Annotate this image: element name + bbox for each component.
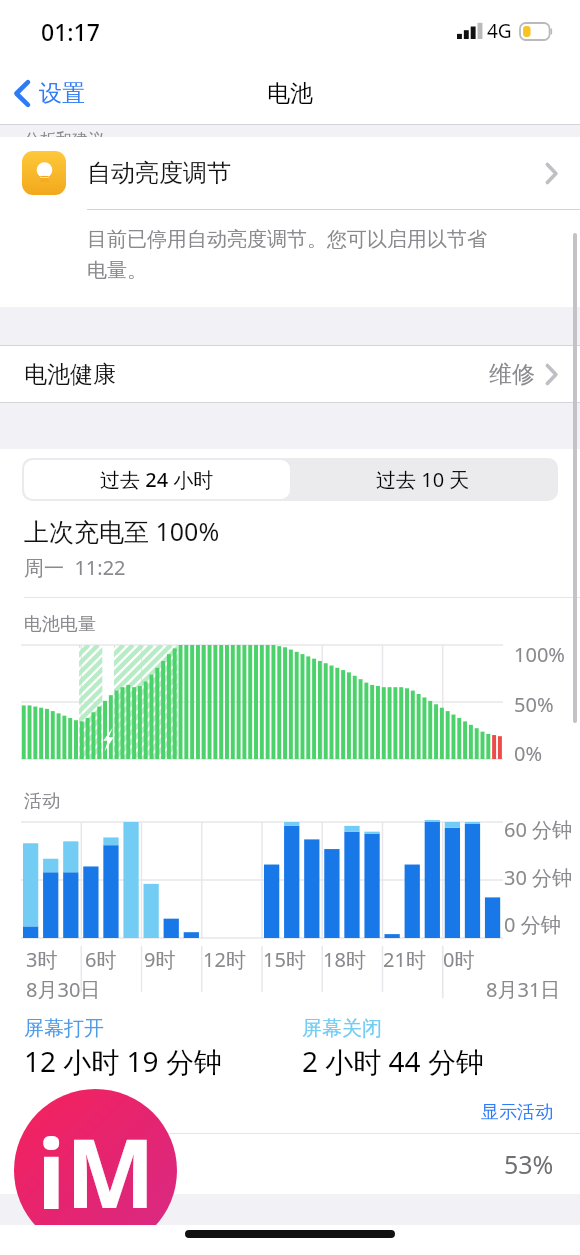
staticText: 目前已停用自动亮度调节。您可以启用以节省 电量。: [87, 227, 487, 283]
staticText: 周一 11:22: [24, 554, 126, 581]
staticText: 53%: [504, 1147, 554, 1181]
button[interactable]: 过去 10 天: [290, 460, 556, 499]
staticText: 电池: [267, 79, 313, 108]
staticText: 8月30日: [26, 976, 101, 1002]
staticText: 过去 10 天: [376, 466, 470, 493]
other: Home indicator: [185, 1230, 395, 1238]
staticText: 电池健康: [24, 360, 489, 389]
staticText: 01:17: [41, 16, 100, 47]
staticText: 上次充电至 100%: [24, 514, 220, 548]
staticText: 自动亮度调节: [87, 158, 545, 188]
staticText: 屏幕打开: [24, 1016, 104, 1041]
staticText: iM: [37, 1106, 155, 1235]
staticText: 0时: [443, 946, 475, 973]
button[interactable]: 电池健康: [0, 346, 580, 402]
staticText: 15时: [263, 946, 306, 973]
staticText: 设置: [39, 79, 85, 108]
staticText: 9时: [144, 946, 176, 973]
staticText: 30 分钟: [504, 864, 573, 891]
staticText: 50%: [514, 691, 554, 718]
button[interactable]: 显示活动: [476, 1096, 558, 1129]
staticText: 18时: [323, 946, 366, 973]
staticText: 4G: [487, 18, 512, 44]
staticText: 0 分钟: [504, 911, 561, 938]
staticText: 6时: [85, 946, 117, 973]
button[interactable]: 自动亮度调节: [0, 137, 580, 209]
staticText: 21时: [383, 946, 426, 973]
staticText: 分析和建议: [24, 130, 104, 142]
staticText: 电池电量: [24, 613, 96, 636]
staticText: 显示活动: [481, 1101, 553, 1124]
staticText: 12时: [203, 946, 246, 973]
staticText: 2 小时 44 分钟: [302, 1042, 484, 1080]
button[interactable]: 过去 24 小时: [24, 460, 290, 499]
staticText: 12 小时 19 分钟: [24, 1042, 222, 1080]
staticText: 60 分钟: [504, 816, 573, 843]
staticText: 0%: [514, 740, 543, 767]
staticText: 8月31日: [486, 976, 561, 1002]
staticText: 屏幕关闭: [302, 1016, 382, 1041]
staticText: 100%: [514, 641, 565, 668]
button[interactable]: 设置: [0, 71, 97, 116]
staticText: 3时: [26, 946, 58, 973]
staticText: 过去 24 小时: [100, 466, 214, 493]
staticText: 维修: [489, 360, 535, 389]
staticText: 活动: [24, 790, 60, 813]
